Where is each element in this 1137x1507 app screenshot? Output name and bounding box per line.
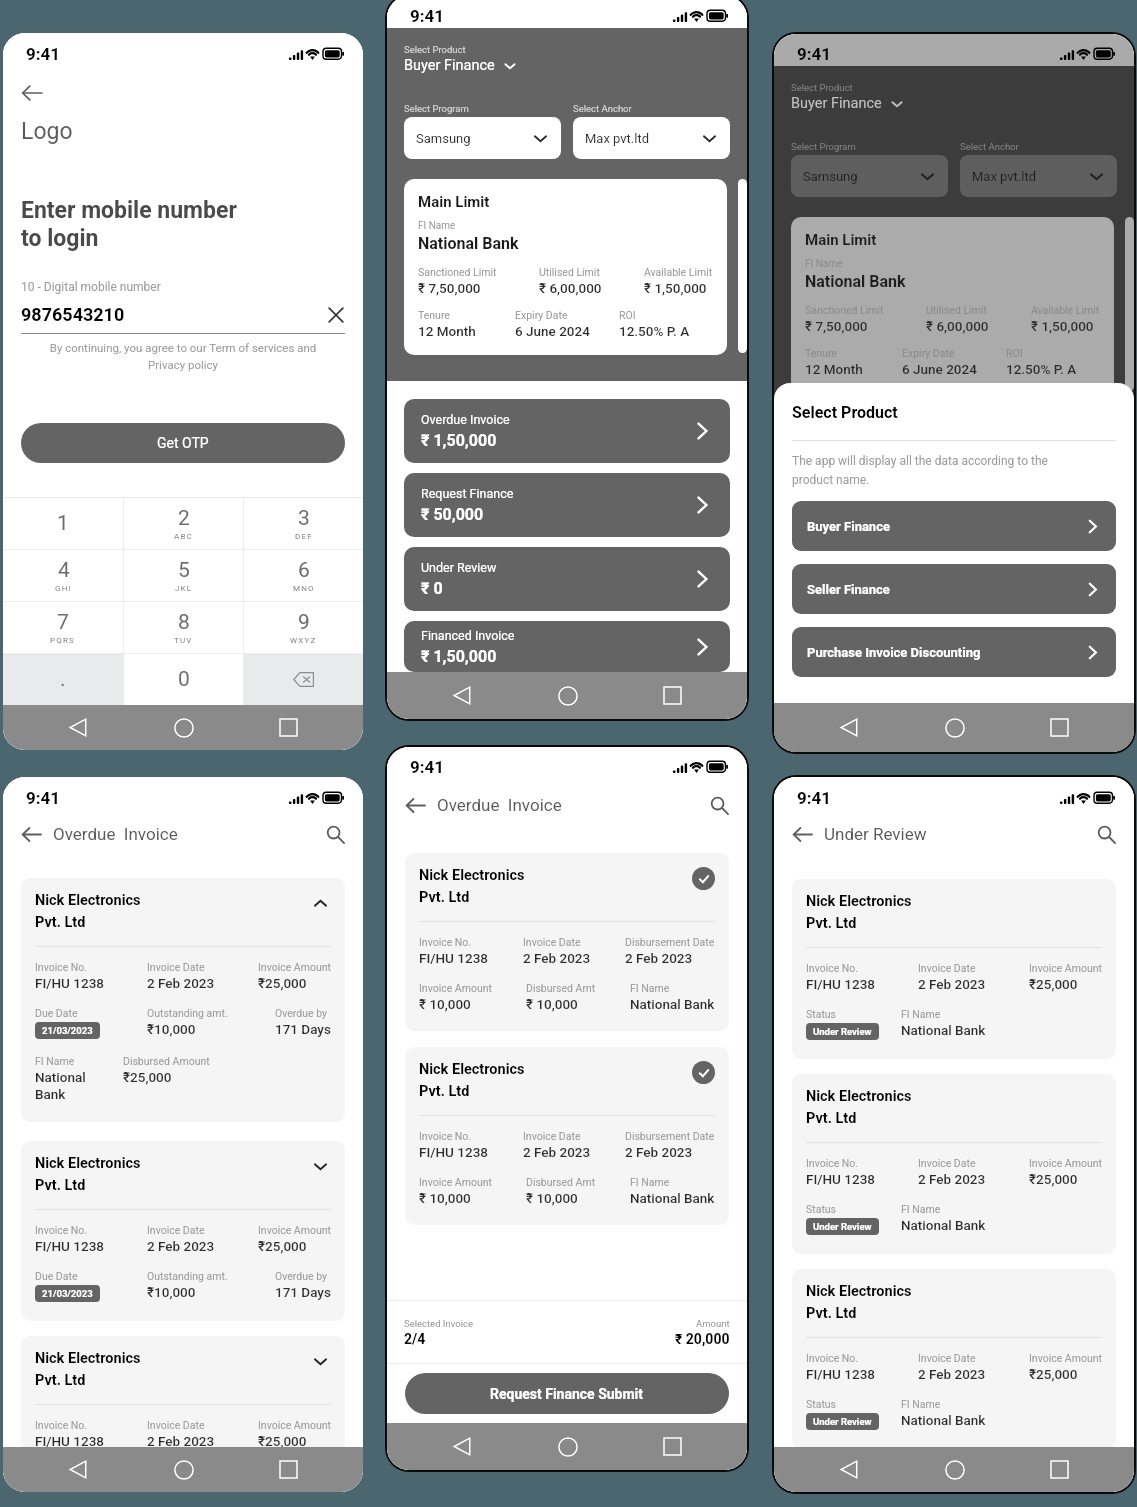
button[interactable]: Back xyxy=(792,824,813,845)
button[interactable]: Buyer Finance xyxy=(791,95,904,112)
staticText: 6 xyxy=(298,558,310,583)
button[interactable]: Home xyxy=(902,1447,1007,1492)
staticText: Invoice No. xyxy=(35,1224,88,1236)
staticText: 2 Feb 2023 xyxy=(918,1366,986,1382)
staticText: Purchase Invoice Discounting xyxy=(807,645,981,660)
button[interactable]: Home xyxy=(131,705,236,750)
button[interactable]: Recents xyxy=(1007,703,1112,752)
button[interactable]: 6 xyxy=(244,550,363,601)
staticText: 21/03/2023 xyxy=(42,1025,93,1036)
staticText: ₹25,000 xyxy=(1029,1366,1078,1382)
button[interactable]: Samsung xyxy=(416,117,549,159)
staticText: 2 Feb 2023 xyxy=(523,950,591,966)
button[interactable]: 4 xyxy=(3,550,123,601)
staticText: ROI xyxy=(1006,347,1023,359)
staticText: 9:41 xyxy=(797,44,832,64)
button[interactable]: Back xyxy=(21,82,43,104)
button[interactable]: Recents xyxy=(236,705,341,750)
staticText: Disbursement Date xyxy=(625,1130,715,1142)
button[interactable]: Request Finance Submit xyxy=(405,1373,729,1414)
button[interactable]: 5 xyxy=(124,550,243,601)
button[interactable]: 1 xyxy=(3,498,123,549)
button[interactable]: Back xyxy=(796,705,902,752)
staticText: Buyer Finance xyxy=(807,519,890,534)
button[interactable]: Search xyxy=(1097,825,1116,844)
button[interactable]: 9 xyxy=(244,602,363,653)
staticText: FI/HU 1238 xyxy=(35,975,104,991)
button[interactable]: Max pvt.ltd xyxy=(585,117,718,159)
button[interactable]: Back xyxy=(409,672,515,719)
button[interactable]: 7 xyxy=(3,602,123,653)
button[interactable]: 8 xyxy=(124,602,243,653)
button[interactable]: Under Review xyxy=(421,547,713,611)
staticText: Samsung xyxy=(416,131,471,146)
button[interactable]: Buyer Finance xyxy=(404,57,517,74)
staticText: . xyxy=(60,667,66,692)
button[interactable]: Recents xyxy=(620,672,725,719)
staticText: National Bank xyxy=(901,1412,986,1428)
button[interactable]: Back xyxy=(25,1447,131,1492)
staticText: Financed Invoice xyxy=(808,663,902,678)
button[interactable]: Home xyxy=(515,1423,620,1470)
button[interactable]: Purchase Invoice Discounting xyxy=(807,627,1101,677)
button[interactable]: Home xyxy=(902,705,1007,752)
button[interactable]: Recents xyxy=(236,1447,341,1492)
button[interactable]: Overdue Invoice xyxy=(808,437,1100,501)
staticText: Buyer Finance xyxy=(791,95,882,112)
button[interactable]: Selected xyxy=(692,1061,715,1084)
button[interactable]: Search xyxy=(326,825,345,844)
button[interactable]: Expand xyxy=(309,892,331,914)
button[interactable]: Back xyxy=(796,1447,902,1492)
button[interactable]: Request Finance xyxy=(421,473,713,537)
button[interactable]: Back xyxy=(405,795,426,816)
button[interactable]: Financed Invoice xyxy=(808,659,1100,705)
staticText: GHI xyxy=(55,584,72,593)
staticText: ₹ 1,50,000 xyxy=(421,431,497,450)
staticText: Select Anchor xyxy=(573,103,632,114)
staticText: Disbursement Date xyxy=(625,936,715,948)
button[interactable]: Selected xyxy=(692,867,715,890)
button[interactable]: Expand xyxy=(309,1350,331,1372)
button[interactable]: Recents xyxy=(1007,705,1112,752)
button[interactable]: 0 xyxy=(124,654,243,705)
staticText: ₹ 10,000 xyxy=(526,996,578,1012)
staticText: Disbursed Amount xyxy=(123,1055,210,1067)
button[interactable]: Overdue Invoice xyxy=(421,399,713,463)
staticText: Overdue Invoice xyxy=(808,450,897,465)
staticText: ₹10,000 xyxy=(147,1021,196,1037)
button[interactable]: Backspace xyxy=(244,654,363,705)
button[interactable]: Under Review xyxy=(808,585,1100,649)
button[interactable]: Expand xyxy=(309,1155,331,1177)
button[interactable]: Seller Finance xyxy=(807,564,1101,614)
staticText: ₹ 10,000 xyxy=(419,996,471,1012)
staticText: Utilised Limit xyxy=(926,304,987,316)
button[interactable]: Back xyxy=(409,1423,515,1470)
button[interactable]: Home xyxy=(902,703,1007,752)
button[interactable]: Recents xyxy=(1007,1447,1112,1492)
staticText: 9:41 xyxy=(26,788,61,808)
button[interactable]: Get OTP xyxy=(21,423,345,463)
button[interactable]: Samsung xyxy=(803,155,936,197)
staticText: Amount xyxy=(696,1318,730,1329)
button[interactable]: Back xyxy=(21,824,42,845)
staticText: Overdue Invoice xyxy=(437,795,562,815)
button[interactable]: Max pvt.ltd xyxy=(972,155,1105,197)
button[interactable]: 3 xyxy=(244,498,363,549)
staticText: Main Limit xyxy=(805,231,877,249)
button[interactable]: Buyer Finance xyxy=(807,501,1101,551)
button[interactable]: Financed Invoice xyxy=(421,621,713,672)
button[interactable]: Back xyxy=(25,705,131,750)
staticText: ₹ 10,000 xyxy=(419,1190,471,1206)
button[interactable]: Back xyxy=(796,703,902,752)
button[interactable]: Home xyxy=(131,1447,236,1492)
button[interactable]: Clear xyxy=(327,306,345,324)
button[interactable]: 2 xyxy=(124,498,243,549)
staticText: Nick Electronics Pvt. Ltd xyxy=(35,1350,141,1388)
staticText: Invoice No. xyxy=(35,1419,88,1431)
button[interactable]: Request Finance xyxy=(808,511,1100,575)
staticText: Invoice Amount xyxy=(1029,1157,1102,1169)
button[interactable]: Search xyxy=(710,796,729,815)
button[interactable]: Home xyxy=(515,672,620,719)
button[interactable]: Recents xyxy=(620,1423,725,1470)
